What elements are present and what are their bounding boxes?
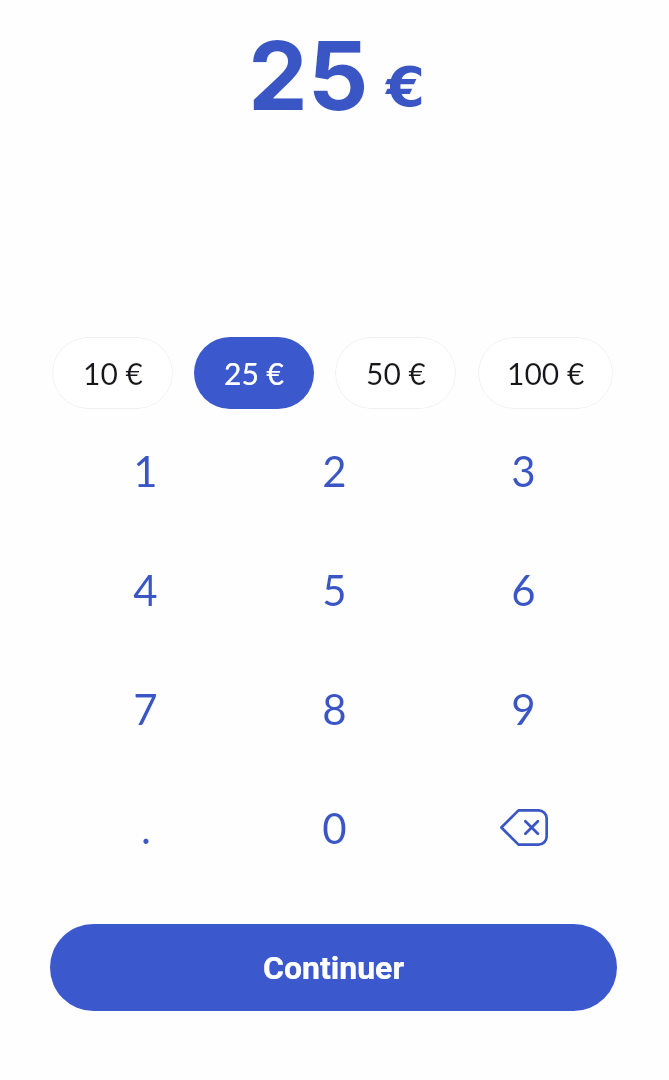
button[interactable]: 5: [240, 530, 429, 649]
staticText: 100 €: [507, 355, 585, 391]
staticText: 3: [511, 446, 536, 496]
staticText: 1: [133, 446, 158, 496]
button[interactable]: 25 €: [194, 337, 314, 409]
staticText: 2: [322, 446, 347, 496]
button[interactable]: .: [51, 768, 240, 887]
button[interactable]: 10 €: [52, 337, 173, 409]
button[interactable]: Backspace: [429, 768, 618, 887]
button[interactable]: 1: [51, 411, 240, 530]
button[interactable]: 7: [51, 649, 240, 768]
button[interactable]: 100 €: [478, 337, 613, 409]
staticText: Continuer: [263, 949, 405, 987]
staticText: 50 €: [366, 355, 426, 391]
button[interactable]: 0: [240, 768, 429, 887]
button[interactable]: 6: [429, 530, 618, 649]
staticText: .: [141, 803, 151, 853]
button[interactable]: Continuer: [50, 924, 617, 1011]
staticText: 7: [133, 684, 158, 734]
staticText: 0: [322, 803, 347, 853]
staticText: 4: [133, 565, 158, 615]
staticText: 5: [322, 565, 347, 615]
button[interactable]: 3: [429, 411, 618, 530]
staticText: 25 €: [224, 355, 284, 391]
staticText: 8: [322, 684, 347, 734]
button[interactable]: 8: [240, 649, 429, 768]
button[interactable]: 50 €: [335, 337, 456, 409]
staticText: 6: [511, 565, 536, 615]
staticText: 10 €: [83, 355, 143, 391]
staticText: 9: [511, 684, 536, 734]
staticText: €: [386, 54, 425, 119]
button[interactable]: 2: [240, 411, 429, 530]
button[interactable]: 9: [429, 649, 618, 768]
staticText: 25: [248, 18, 369, 133]
button[interactable]: 4: [51, 530, 240, 649]
